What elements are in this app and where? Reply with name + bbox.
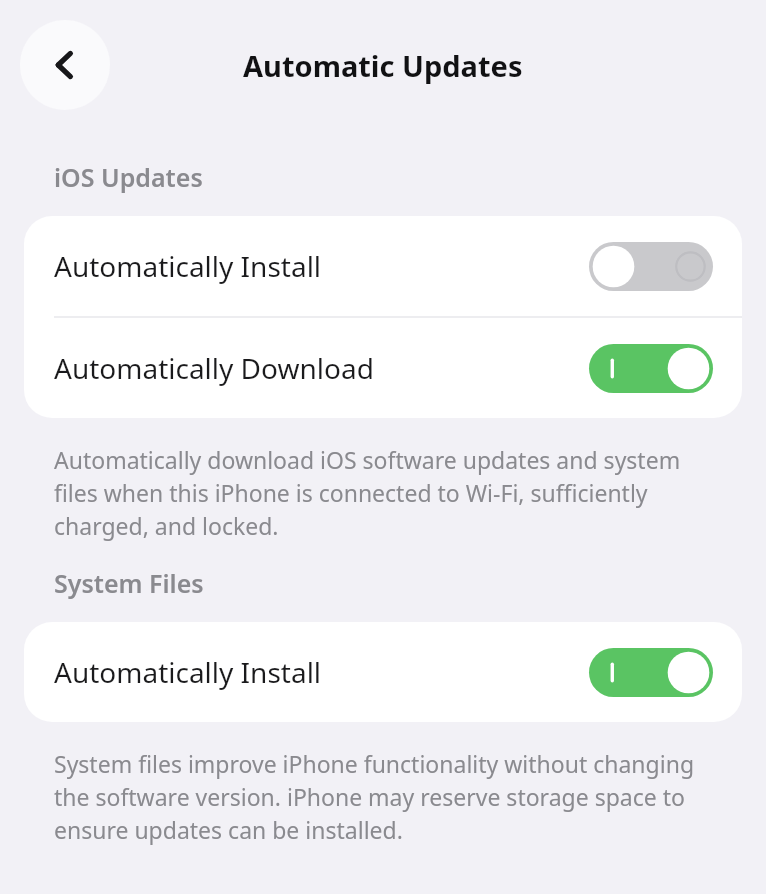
staticText: System Files (54, 566, 204, 600)
button[interactable]: Back (20, 20, 110, 110)
staticText: System files improve iPhone functionalit… (54, 748, 706, 846)
staticText: Automatically Install (54, 247, 322, 285)
button[interactable]: Automatically Install (24, 622, 742, 722)
staticText: Automatically Install (54, 653, 322, 691)
button[interactable]: Automatically Install (24, 216, 742, 316)
button[interactable]: Automatically Download (24, 318, 742, 418)
staticText: Automatically Download (54, 349, 374, 387)
button[interactable]: On (589, 344, 713, 393)
button[interactable]: Off (589, 242, 713, 291)
button[interactable]: On (589, 648, 713, 697)
staticText: iOS Updates (54, 160, 203, 194)
staticText: Automatic Updates (243, 46, 523, 85)
staticText: Automatically download iOS software upda… (54, 444, 706, 542)
